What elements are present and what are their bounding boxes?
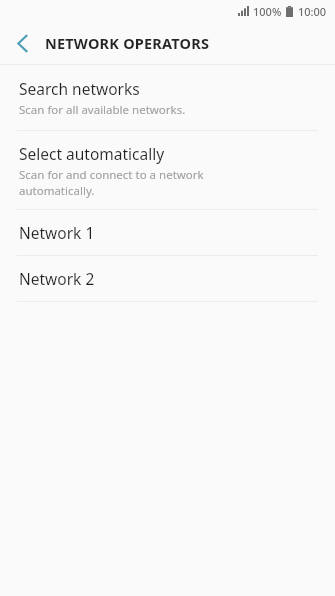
button[interactable]: Select automatically: [0, 131, 335, 209]
button[interactable]: Network 1: [0, 210, 335, 255]
staticText: Scan for all available networks.: [19, 102, 186, 118]
button[interactable]: Search networks: [0, 65, 335, 130]
button[interactable]: Back: [0, 22, 45, 64]
staticText: Network 2: [19, 268, 95, 289]
staticText: 10:00: [298, 4, 327, 19]
staticText: NETWORK OPERATORS: [45, 33, 210, 53]
button[interactable]: Network 2: [0, 256, 335, 301]
staticText: Search networks: [19, 78, 140, 99]
staticText: Network 1: [19, 222, 95, 243]
staticText: Select automatically: [19, 143, 165, 164]
staticText: Scan for and connect to a network automa…: [19, 167, 204, 198]
staticText: 100%: [253, 4, 282, 19]
